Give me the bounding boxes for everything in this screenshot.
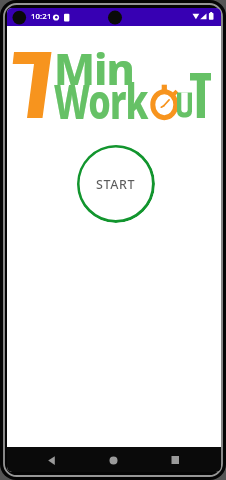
staticText: Min: [54, 39, 134, 98]
staticText: START: [96, 176, 136, 193]
staticText: Work: [54, 68, 148, 132]
staticText: 10:21: [31, 11, 52, 22]
button[interactable]: [103, 450, 124, 471]
button[interactable]: START: [77, 145, 155, 223]
button[interactable]: [41, 450, 62, 471]
button[interactable]: [165, 450, 186, 471]
